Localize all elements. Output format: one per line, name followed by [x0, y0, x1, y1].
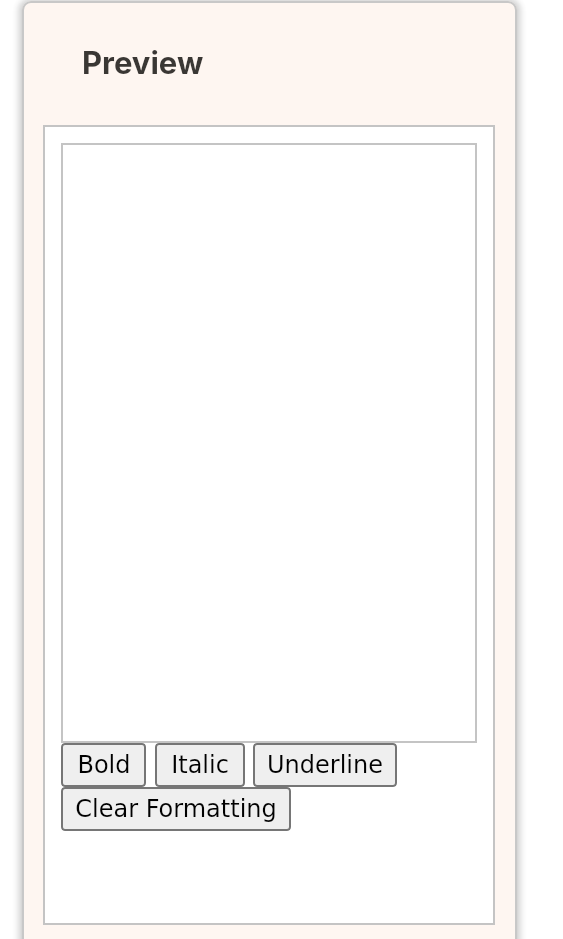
staticText: Clear Formatting	[75, 795, 277, 823]
staticText: Bold	[77, 751, 131, 779]
staticText: Underline	[267, 751, 383, 779]
button[interactable]: Clear Formatting	[61, 787, 291, 831]
staticText: Italic	[171, 751, 229, 779]
button[interactable]: Bold	[61, 743, 146, 787]
button[interactable]: Rich text editor	[61, 143, 477, 743]
staticText: Preview	[82, 44, 204, 82]
button[interactable]: Italic	[155, 743, 245, 787]
button[interactable]: Underline	[253, 743, 397, 787]
